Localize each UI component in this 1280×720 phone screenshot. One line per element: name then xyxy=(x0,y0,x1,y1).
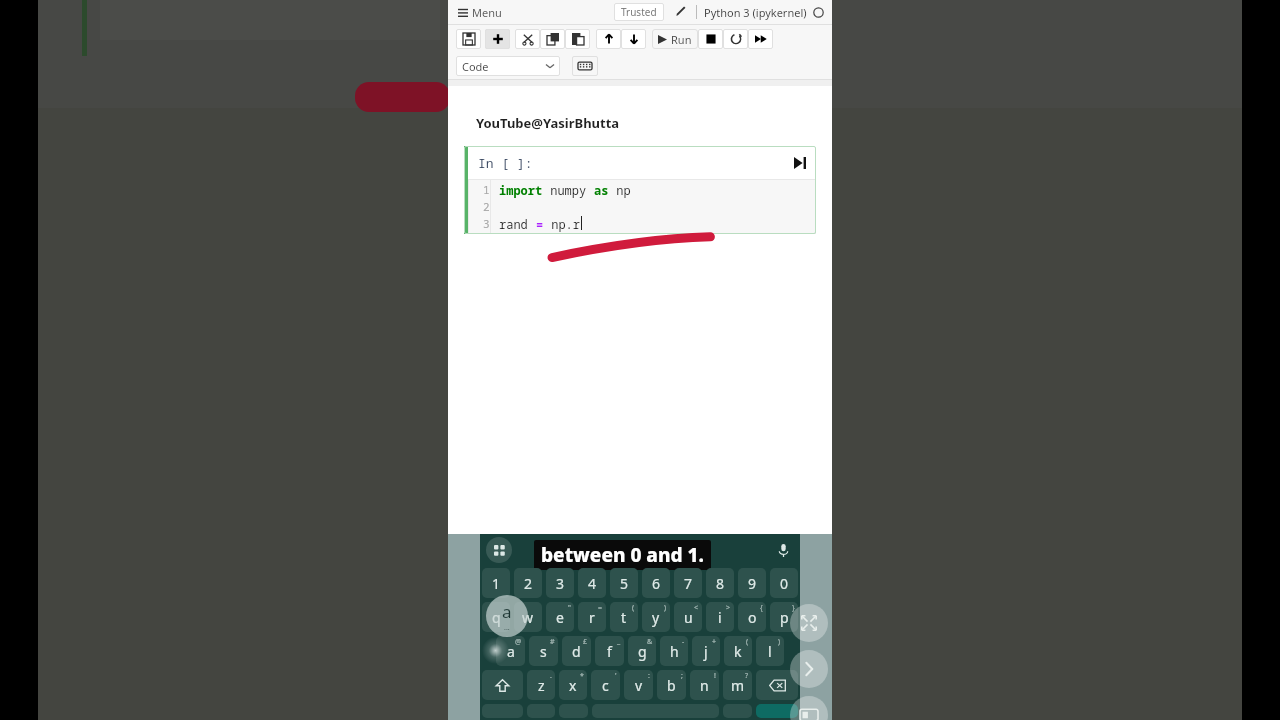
button[interactable]: Keyboard options xyxy=(480,534,506,560)
button[interactable]: c xyxy=(591,670,620,700)
staticText: 8 xyxy=(716,574,725,593)
button[interactable]: Screen xyxy=(790,696,828,720)
staticText: rand xyxy=(499,216,536,232)
button[interactable]: Edit xyxy=(674,5,688,19)
button[interactable]: Run xyxy=(652,29,698,49)
button[interactable]: Copy xyxy=(540,29,565,49)
button[interactable]: g xyxy=(628,636,656,666)
button[interactable]: s xyxy=(529,636,558,666)
staticText: y xyxy=(652,608,660,627)
staticText: ) xyxy=(664,603,667,613)
staticText: = xyxy=(598,603,603,613)
button[interactable]: Run all xyxy=(748,29,773,49)
button[interactable]: Cut xyxy=(515,29,540,49)
button[interactable]: Run cell xyxy=(794,157,806,169)
staticText: Menu xyxy=(472,5,502,20)
button[interactable]: Shift xyxy=(480,668,525,702)
staticText: ... xyxy=(504,623,510,633)
button[interactable]: Enter xyxy=(754,702,800,720)
button[interactable]: Code xyxy=(456,56,560,76)
button[interactable]: v xyxy=(624,670,653,700)
button[interactable]: n xyxy=(690,670,719,700)
staticText: 9 xyxy=(748,574,757,593)
button[interactable]: Trusted xyxy=(614,3,664,21)
button[interactable]: y xyxy=(642,602,670,632)
staticText: np.r xyxy=(544,216,581,232)
staticText: q xyxy=(492,608,501,627)
button[interactable]: w xyxy=(514,602,542,632)
button[interactable]: Save xyxy=(456,29,481,49)
button[interactable]: Menu xyxy=(456,5,504,20)
button[interactable]: Period xyxy=(721,702,754,720)
staticText: h xyxy=(670,642,679,661)
staticText: £ xyxy=(583,637,588,647)
button[interactable]: Backspace xyxy=(754,668,800,702)
staticText: } xyxy=(792,603,795,613)
button[interactable]: 4 xyxy=(578,568,606,598)
button[interactable]: b xyxy=(657,670,686,700)
staticText: 2 xyxy=(524,574,533,593)
button[interactable]: 8 xyxy=(706,568,734,598)
staticText: i xyxy=(718,608,722,627)
button[interactable]: o xyxy=(738,602,766,632)
staticText: Code xyxy=(462,59,489,74)
button[interactable]: r xyxy=(578,602,606,632)
button[interactable]: e xyxy=(546,602,574,632)
button[interactable]: Settings xyxy=(557,702,590,720)
staticText: l xyxy=(768,642,772,661)
button[interactable]: Symbols xyxy=(480,702,525,720)
button[interactable]: f xyxy=(595,636,624,666)
staticText: 2 xyxy=(483,199,490,216)
button[interactable]: x xyxy=(559,670,587,700)
button[interactable]: Paste xyxy=(565,29,590,49)
button[interactable]: j xyxy=(692,636,720,666)
button[interactable]: Space xyxy=(590,702,721,720)
button[interactable]: Move down xyxy=(621,29,646,49)
button[interactable]: Emoji xyxy=(525,702,557,720)
button[interactable]: Resize xyxy=(790,604,828,642)
button[interactable]: p xyxy=(770,602,798,632)
button[interactable]: Restart xyxy=(723,29,748,49)
button[interactable]: m xyxy=(723,670,752,700)
button[interactable]: Move up xyxy=(596,29,621,49)
button[interactable]: Voice input xyxy=(772,539,800,561)
button[interactable]: Insert cell xyxy=(485,29,510,49)
button[interactable]: t xyxy=(610,602,638,632)
button[interactable]: 2 xyxy=(514,568,542,598)
staticText: w xyxy=(522,608,534,627)
button[interactable]: u xyxy=(674,602,702,632)
button[interactable]: Next xyxy=(790,650,828,688)
staticText: r xyxy=(589,608,595,627)
staticText: import xyxy=(499,182,543,198)
button[interactable]: 1 xyxy=(482,568,510,598)
staticText: _ xyxy=(617,637,621,647)
button[interactable]: i xyxy=(706,602,734,632)
button[interactable]: 3 xyxy=(546,568,574,598)
staticText: Trusted xyxy=(621,5,657,19)
staticText: : xyxy=(648,671,650,681)
staticText: ; xyxy=(681,671,683,681)
staticText: m xyxy=(731,676,745,695)
button[interactable]: l xyxy=(756,636,784,666)
button[interactable]: Stop xyxy=(698,29,723,49)
button[interactable]: h xyxy=(660,636,688,666)
other: Kernel idle xyxy=(813,7,824,18)
button[interactable]: k xyxy=(724,636,752,666)
button[interactable]: d xyxy=(562,636,591,666)
button[interactable]: Keyboard xyxy=(572,56,598,76)
button[interactable]: 5 xyxy=(610,568,638,598)
staticText: < xyxy=(694,603,699,613)
staticText: 0 xyxy=(780,574,789,593)
staticText: np xyxy=(609,182,631,198)
staticText: ' xyxy=(615,671,617,681)
button[interactable]: 7 xyxy=(674,568,702,598)
button[interactable]: z xyxy=(527,670,555,700)
button[interactable]: a xyxy=(496,636,525,666)
button[interactable]: 6 xyxy=(642,568,670,598)
button[interactable]: 9 xyxy=(738,568,766,598)
button[interactable]: 0 xyxy=(770,568,798,598)
button[interactable]: q xyxy=(482,602,510,632)
staticText: v xyxy=(635,676,643,695)
staticText: { xyxy=(760,603,763,613)
staticText: 3 xyxy=(556,574,565,593)
